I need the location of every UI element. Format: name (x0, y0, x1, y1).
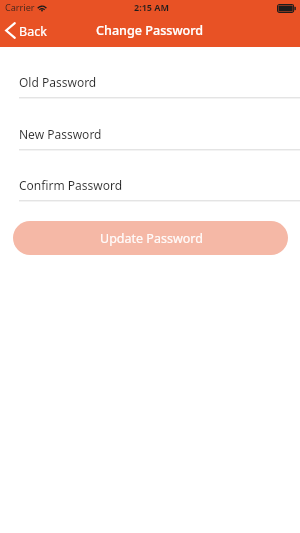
button[interactable]: Update Password (13, 221, 288, 255)
staticText: Carrier (5, 1, 35, 13)
staticText: Change Password (96, 22, 204, 39)
staticText: Back (19, 23, 47, 40)
staticText: New Password (19, 126, 102, 142)
button[interactable]: Confirm Password (0, 149, 300, 200)
button[interactable]: Back (0, 22, 55, 43)
button[interactable]: Old Password (0, 46, 300, 97)
staticText: Confirm Password (19, 177, 123, 193)
staticText: Old Password (19, 74, 97, 90)
staticText: Update Password (100, 230, 203, 247)
button[interactable]: New Password (0, 98, 300, 149)
staticText: 2:15 AM (134, 1, 170, 13)
